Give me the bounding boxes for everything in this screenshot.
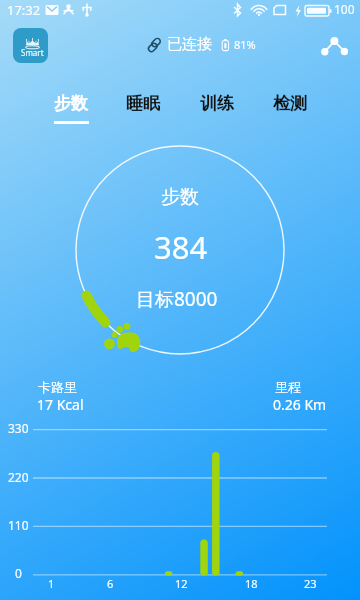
button[interactable]: 睡眠 xyxy=(110,88,176,126)
staticText: 检测 xyxy=(273,93,307,114)
staticText: 81% xyxy=(234,37,256,52)
staticText: 17 Kcal xyxy=(37,395,84,414)
staticText: 卡路里 xyxy=(38,379,77,395)
staticText: 里程 xyxy=(275,379,301,395)
staticText: 训练 xyxy=(200,93,234,114)
staticText: 100 xyxy=(334,1,355,17)
staticText: 330 xyxy=(8,420,29,436)
staticText: 已连接 xyxy=(167,35,212,54)
button[interactable]: 检测 xyxy=(257,88,323,126)
staticText: 0 xyxy=(15,565,22,581)
staticText: 384 xyxy=(154,226,208,268)
staticText: 23 xyxy=(304,576,317,591)
staticText: 1 xyxy=(48,576,55,591)
staticText: 步数 xyxy=(161,185,199,209)
staticText: 睡眠 xyxy=(126,93,160,114)
staticText: 17:32 xyxy=(7,1,41,19)
staticText: 12 xyxy=(175,576,188,591)
button[interactable]: 训练 xyxy=(184,88,250,126)
staticText: 6 xyxy=(107,576,114,591)
staticText: 220 xyxy=(8,469,29,485)
staticText: 步数 xyxy=(54,93,88,114)
staticText: 目标8000 xyxy=(136,286,218,312)
button[interactable]: Share xyxy=(316,30,352,66)
staticText: 110 xyxy=(8,517,29,533)
button[interactable]: 步数 xyxy=(38,88,104,126)
button[interactable]: Smart app xyxy=(13,28,48,63)
staticText: 18 xyxy=(245,576,258,591)
staticText: Smart xyxy=(21,47,44,58)
staticText: 0.26 Km xyxy=(273,395,327,414)
